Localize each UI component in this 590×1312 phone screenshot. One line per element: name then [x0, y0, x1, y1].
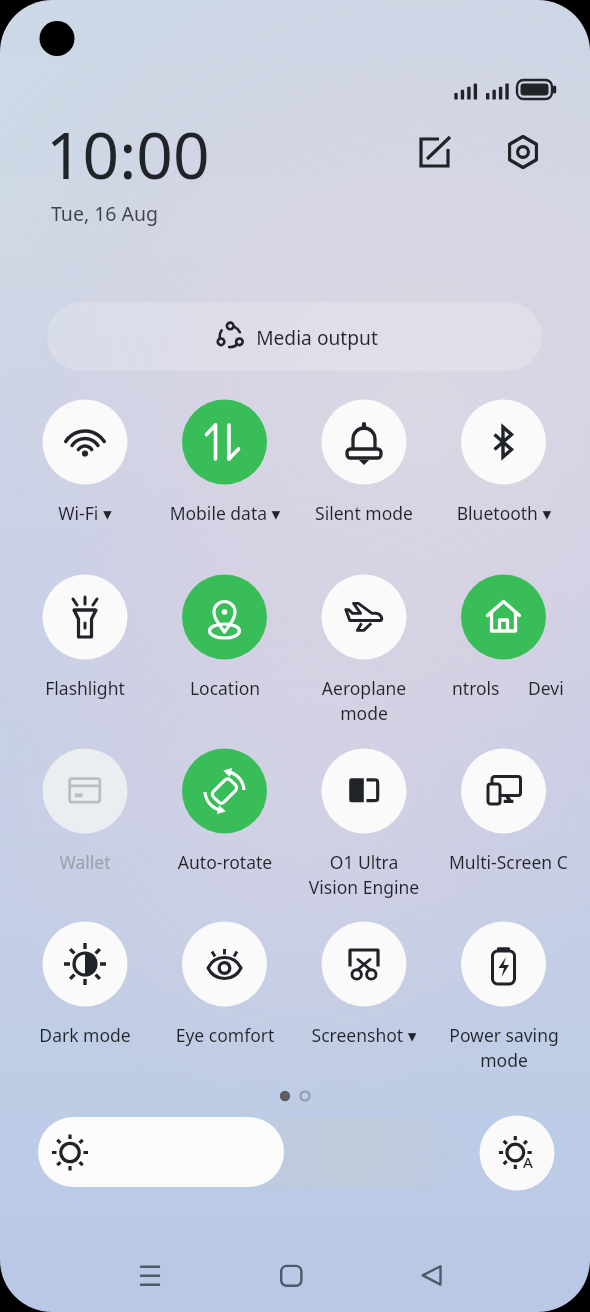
- staticText: Wi-Fi ▾: [0, 501, 170, 701]
- staticText: 10:00: [46, 111, 306, 311]
- staticText: A: [513, 1152, 543, 1312]
- staticText: Screenshot ▾: [279, 1023, 449, 1223]
- staticText: Aeroplane mode: [279, 676, 449, 876]
- staticText: Eye comfort: [140, 1023, 310, 1223]
- button[interactable]: Aeroplane mode: [322, 575, 407, 660]
- staticText: Flashlight: [0, 676, 170, 876]
- staticText: Tue, 16 Aug: [51, 200, 311, 400]
- button[interactable]: Mobile data: [182, 400, 267, 485]
- button[interactable]: Power saving mode: [461, 922, 546, 1007]
- staticText: Mobile data ▾: [140, 501, 310, 701]
- staticText: Bluetooth ▾: [419, 501, 589, 701]
- staticText: Dark mode: [0, 1023, 170, 1223]
- staticText: Media output: [207, 324, 427, 524]
- staticText: Devi: [528, 676, 590, 876]
- staticText: O1 Ultra Vision Engine: [279, 850, 449, 1050]
- button[interactable]: O1 Ultra Vision Engine: [322, 749, 407, 834]
- button[interactable]: Wi-Fi: [43, 400, 128, 485]
- button[interactable]: Silent mode: [322, 400, 407, 485]
- button[interactable]: Auto brightness: [480, 1116, 555, 1191]
- button[interactable]: Home: [269, 1252, 314, 1300]
- button[interactable]: Brightness: [38, 1119, 456, 1187]
- button[interactable]: Screenshot: [322, 922, 407, 1007]
- button[interactable]: Back: [410, 1252, 455, 1300]
- staticText: ntrols: [452, 676, 532, 876]
- button[interactable]: Settings: [499, 128, 547, 176]
- button[interactable]: Eye comfort: [182, 922, 267, 1007]
- button[interactable]: Flashlight: [43, 575, 128, 660]
- button[interactable]: Recent apps: [128, 1252, 173, 1300]
- button[interactable]: Bluetooth: [461, 400, 546, 485]
- staticText: Auto-rotate: [140, 850, 310, 1050]
- staticText: Wallet: [0, 850, 170, 1050]
- button[interactable]: Device controls: [461, 575, 546, 660]
- staticText: Multi-Screen C: [449, 850, 589, 1050]
- button[interactable]: Media output: [47, 302, 542, 371]
- button[interactable]: Location: [182, 575, 267, 660]
- staticText: Silent mode: [279, 501, 449, 701]
- button[interactable]: Dark mode: [43, 922, 128, 1007]
- button[interactable]: Wallet: [43, 749, 128, 834]
- button[interactable]: Auto-rotate: [182, 749, 267, 834]
- button[interactable]: Edit quick settings: [410, 128, 458, 176]
- staticText: Power saving mode: [419, 1023, 589, 1223]
- staticText: Location: [140, 676, 310, 876]
- button[interactable]: Multi-Screen: [461, 749, 546, 834]
